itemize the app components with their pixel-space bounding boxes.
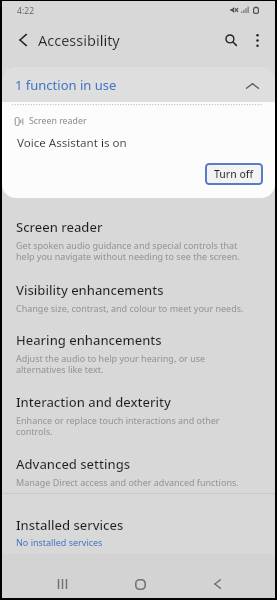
button[interactable]: Installed services: [2, 509, 275, 553]
button[interactable]: Interaction and dexterity: [2, 393, 275, 454]
button[interactable]: Navigate up: [7, 24, 39, 56]
staticText: Voice Assistant is on: [17, 135, 127, 151]
staticText: Enhance or replace touch interactions an…: [16, 414, 253, 438]
button[interactable]: Turn off: [205, 163, 263, 185]
button[interactable]: More options: [241, 24, 273, 56]
staticText: Hearing enhancements: [16, 331, 162, 349]
button[interactable]: Recent apps: [41, 559, 84, 593]
button[interactable]: Visibility enhancements: [2, 281, 275, 331]
staticText: No installed services: [16, 536, 103, 548]
staticText: Turn off: [214, 167, 254, 181]
button[interactable]: Home: [119, 559, 162, 593]
button[interactable]: Search: [215, 24, 247, 56]
staticText: Installed services: [16, 516, 124, 534]
button[interactable]: 1 function in use: [2, 67, 275, 102]
button[interactable]: Screen reader: [2, 218, 275, 280]
staticText: 4:22: [17, 5, 35, 17]
staticText: Advanced settings: [16, 455, 131, 473]
staticText: 1 function in use: [15, 76, 117, 94]
button[interactable]: Back: [196, 559, 239, 593]
button[interactable]: Advanced settings: [2, 455, 275, 489]
staticText: Change size, contrast, and colour to mee…: [16, 302, 244, 314]
staticText: Visibility enhancements: [16, 281, 164, 299]
staticText: Adjust the audio to help your hearing, o…: [16, 352, 253, 376]
staticText: Get spoken audio guidance and special co…: [16, 239, 253, 263]
staticText: Manage Direct access and other advanced …: [16, 476, 239, 488]
staticText: Interaction and dexterity: [16, 393, 171, 411]
staticText: Accessibility: [38, 30, 120, 50]
button[interactable]: Hearing enhancements: [2, 331, 275, 393]
staticText: Screen reader: [29, 115, 87, 127]
staticText: Screen reader: [16, 218, 103, 236]
